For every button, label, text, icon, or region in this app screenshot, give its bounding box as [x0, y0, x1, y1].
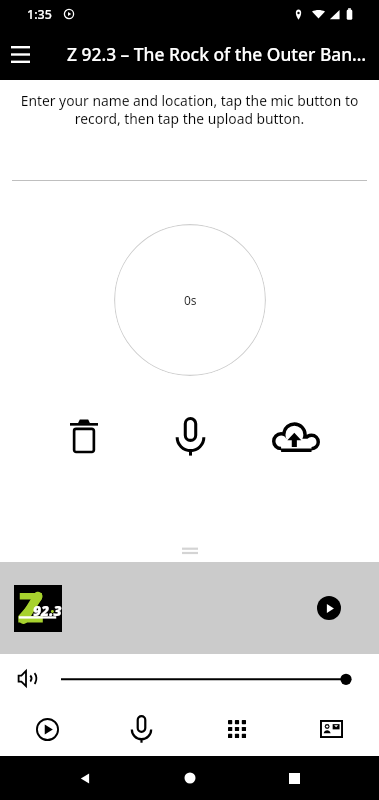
- button[interactable]: Apps: [189, 702, 284, 756]
- button[interactable]: Mute: [13, 664, 42, 692]
- button[interactable]: Open navigation drawer: [0, 28, 41, 80]
- button[interactable]: Upload: [266, 406, 326, 466]
- staticText: Enter your name and location, tap the mi…: [10, 91, 369, 128]
- button[interactable]: Back: [65, 758, 105, 798]
- staticText: 0s: [184, 292, 197, 308]
- button[interactable]: Delete recording: [54, 406, 114, 466]
- button[interactable]: Contact us: [284, 702, 379, 756]
- button[interactable]: Listen live: [0, 702, 94, 756]
- button[interactable]: Record a message: [94, 702, 189, 756]
- staticText: 92.3: [33, 601, 62, 620]
- button[interactable]: Z 92.3 station artwork: [14, 585, 62, 632]
- button[interactable]: Recording timer: [114, 224, 266, 376]
- staticText: 1:35: [27, 6, 52, 23]
- button[interactable]: Record: [160, 406, 220, 466]
- button[interactable]: Play: [317, 596, 341, 620]
- button[interactable]: Home: [170, 758, 210, 798]
- staticText: Z 92.3 – The Rock of the Outer Ban…: [67, 42, 367, 66]
- button[interactable]: Recent apps: [274, 758, 314, 798]
